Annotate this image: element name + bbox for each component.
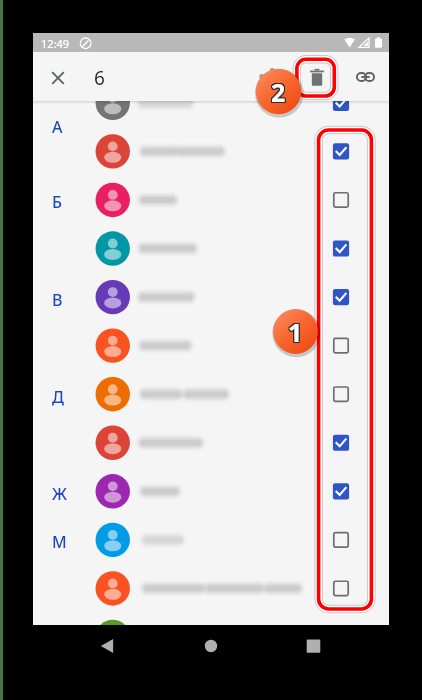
- button[interactable]: Close: [43, 63, 72, 92]
- staticText: 1: [287, 314, 302, 348]
- staticText: 1: [289, 315, 304, 349]
- staticText: 1: [288, 314, 303, 348]
- staticText: 2: [272, 76, 287, 110]
- staticText: 2: [271, 74, 286, 108]
- staticText: Б: [52, 191, 62, 213]
- staticText: 1: [288, 314, 303, 348]
- staticText: 1: [288, 316, 303, 350]
- staticText: А: [52, 116, 63, 138]
- staticText: 2: [271, 76, 286, 110]
- staticText: 1: [289, 314, 304, 348]
- staticText: 2: [270, 75, 285, 109]
- staticText: 2: [270, 75, 285, 109]
- staticText: 2: [270, 76, 285, 110]
- staticText: 1: [287, 314, 302, 348]
- staticText: 1: [287, 315, 302, 349]
- staticText: 6: [94, 65, 105, 89]
- staticText: 1: [287, 316, 302, 350]
- staticText: 2: [270, 74, 285, 108]
- staticText: 1: [289, 314, 304, 348]
- staticText: 2: [270, 76, 285, 110]
- staticText: 1: [287, 316, 302, 350]
- staticText: Д: [52, 386, 64, 408]
- staticText: 2: [271, 74, 286, 108]
- staticText: 2: [272, 76, 287, 110]
- staticText: 12:49: [41, 36, 70, 51]
- staticText: 2: [270, 76, 285, 110]
- staticText: 1: [289, 314, 304, 348]
- staticText: 2: [272, 74, 287, 108]
- staticText: 1: [289, 316, 304, 350]
- staticText: 1: [287, 315, 302, 349]
- staticText: 1: [289, 315, 304, 349]
- staticText: 2: [270, 74, 285, 108]
- staticText: 1: [288, 315, 303, 349]
- staticText: 2: [271, 75, 286, 109]
- staticText: 2: [272, 74, 287, 108]
- staticText: 2: [270, 74, 285, 108]
- staticText: 1: [287, 314, 302, 348]
- staticText: В: [52, 289, 63, 311]
- staticText: 2: [272, 75, 287, 109]
- button[interactable]: Share link: [351, 63, 379, 91]
- staticText: М: [52, 531, 67, 553]
- staticText: 2: [272, 74, 287, 108]
- staticText: 2: [272, 76, 287, 110]
- staticText: 1: [289, 316, 304, 350]
- button[interactable]: Delete: [303, 63, 331, 91]
- staticText: 1: [289, 316, 304, 350]
- staticText: Ж: [52, 483, 67, 505]
- staticText: 1: [288, 316, 303, 350]
- staticText: 2: [271, 76, 286, 110]
- staticText: 1: [287, 316, 302, 350]
- staticText: 2: [272, 75, 287, 109]
